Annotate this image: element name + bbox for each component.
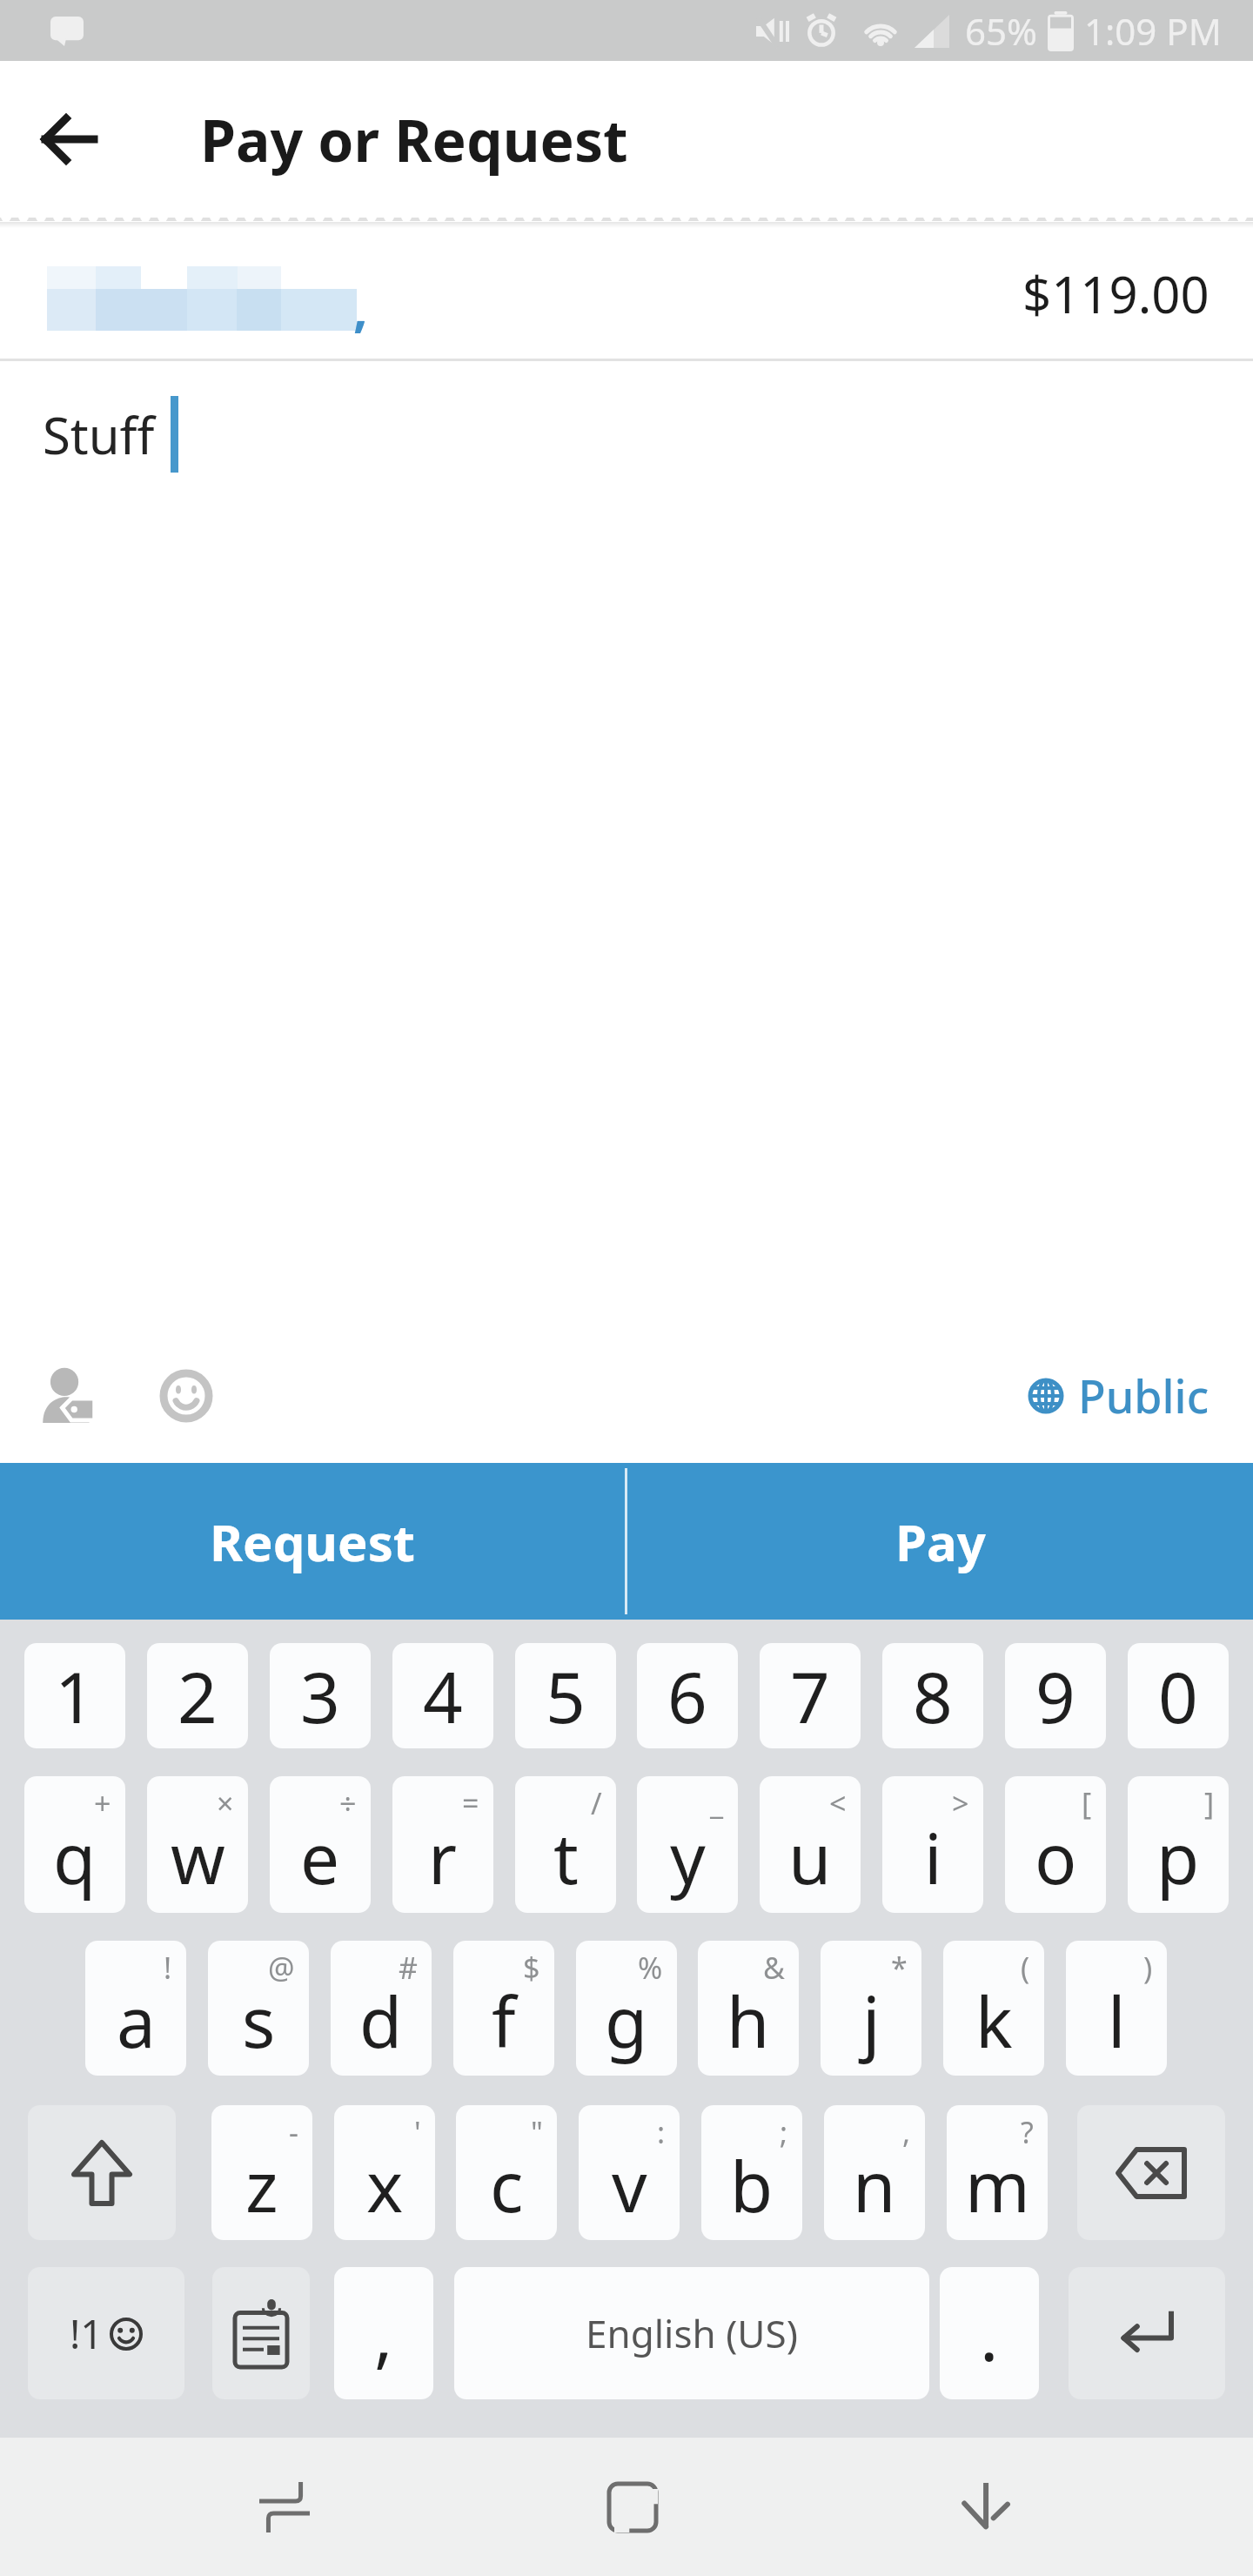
staticText: , [353, 273, 368, 342]
staticText: 7 [790, 1648, 830, 1743]
button[interactable] [924, 2472, 1046, 2542]
button[interactable]: , [824, 2105, 925, 2240]
staticText: $ [523, 1948, 540, 1988]
staticText: ! [164, 1948, 172, 1988]
staticText: Pay or Request [200, 100, 628, 178]
button[interactable]: " [456, 2105, 557, 2240]
button[interactable]: & [698, 1941, 799, 2076]
staticText: 2 [178, 1648, 218, 1743]
button[interactable]: Public [1028, 1365, 1209, 1426]
staticText: @ [268, 1948, 295, 1988]
button[interactable]: < [760, 1776, 861, 1913]
button[interactable] [572, 2472, 694, 2542]
button[interactable]: English (US) [454, 2267, 929, 2399]
button[interactable]: !1 [28, 2267, 184, 2399]
button[interactable]: 0 [1128, 1643, 1229, 1748]
button[interactable] [224, 2472, 345, 2542]
button[interactable]: + [24, 1776, 125, 1913]
staticText: 1 [55, 1648, 95, 1743]
staticText: y [670, 1809, 706, 1904]
staticText: $119.00 [1022, 259, 1209, 328]
staticText: m [965, 2137, 1030, 2232]
staticText: v [612, 2137, 647, 2232]
button[interactable]: [ [1005, 1776, 1106, 1913]
staticText: z [245, 2137, 278, 2232]
button[interactable]: ) [1066, 1941, 1167, 2076]
staticText: t [553, 1809, 579, 1904]
button[interactable]: ( [943, 1941, 1044, 2076]
button[interactable]: 5 [515, 1643, 616, 1748]
staticText: b [730, 2137, 774, 2232]
button[interactable]: _ [637, 1776, 738, 1913]
staticText: d [359, 1973, 403, 2068]
button[interactable] [212, 2267, 310, 2399]
button[interactable]: 1 [24, 1643, 125, 1748]
staticText: > [952, 1783, 969, 1823]
button[interactable]: Pay [627, 1463, 1253, 1620]
staticText: < [829, 1783, 847, 1823]
button[interactable]: ; [701, 2105, 802, 2240]
button[interactable]: 8 [882, 1643, 983, 1748]
staticText: 3 [300, 1648, 340, 1743]
staticText: i [924, 1809, 942, 1904]
staticText: r [428, 1809, 458, 1904]
button[interactable]: @ [208, 1941, 309, 2076]
button[interactable] [160, 1370, 212, 1422]
staticText: . [980, 2286, 999, 2381]
staticText: ÷ [339, 1783, 357, 1823]
staticText: * [891, 1948, 908, 1988]
button[interactable]: Request [0, 1463, 625, 1620]
button[interactable] [1077, 2105, 1225, 2240]
staticText: : [657, 2112, 666, 2152]
button[interactable]: ] [1128, 1776, 1229, 1913]
button[interactable]: # [331, 1941, 432, 2076]
staticText: 9 [1035, 1648, 1075, 1743]
button[interactable]: 9 [1005, 1643, 1106, 1748]
staticText: - [289, 2112, 298, 2152]
staticText: s [242, 1973, 276, 2068]
button[interactable]: = [392, 1776, 493, 1913]
button[interactable]: , [0, 228, 1253, 359]
button[interactable]: ' [334, 2105, 435, 2240]
button[interactable]: : [579, 2105, 680, 2240]
staticText: & [763, 1948, 785, 1988]
staticText: , [374, 2286, 393, 2381]
staticText: x [366, 2137, 404, 2232]
button[interactable] [28, 2105, 176, 2240]
button[interactable]: - [211, 2105, 312, 2240]
staticText: ' [414, 2112, 421, 2152]
button[interactable]: > [882, 1776, 983, 1913]
button[interactable] [42, 1369, 96, 1423]
button[interactable]: ÷ [270, 1776, 371, 1913]
staticText: " [531, 2112, 543, 2152]
button[interactable]: * [821, 1941, 921, 2076]
button[interactable]: 3 [270, 1643, 371, 1748]
button[interactable]: 4 [392, 1643, 493, 1748]
staticText: 5 [546, 1648, 586, 1743]
staticText: , [902, 2112, 911, 2152]
button[interactable]: % [576, 1941, 677, 2076]
staticText: ? [1021, 2112, 1034, 2152]
button[interactable] [0, 61, 139, 218]
button[interactable]: 2 [147, 1643, 248, 1748]
button[interactable]: / [515, 1776, 616, 1913]
staticText: c [490, 2137, 524, 2232]
button[interactable]: , [334, 2267, 433, 2399]
staticText: # [399, 1948, 418, 1988]
button[interactable]: ? [947, 2105, 1048, 2240]
staticText: _ [710, 1783, 724, 1823]
staticText: k [975, 1973, 1013, 2068]
staticText: f [492, 1973, 516, 2068]
staticText: g [605, 1973, 648, 2068]
button[interactable]: 7 [760, 1643, 861, 1748]
button[interactable] [1069, 2267, 1225, 2399]
staticText: 6 [667, 1648, 707, 1743]
staticText: u [788, 1809, 832, 1904]
staticText: n [853, 2137, 896, 2232]
button[interactable]: . [940, 2267, 1039, 2399]
button[interactable]: × [147, 1776, 248, 1913]
button[interactable]: ! [85, 1941, 186, 2076]
button[interactable]: 6 [637, 1643, 738, 1748]
staticText: 4 [423, 1648, 463, 1743]
button[interactable]: $ [453, 1941, 554, 2076]
